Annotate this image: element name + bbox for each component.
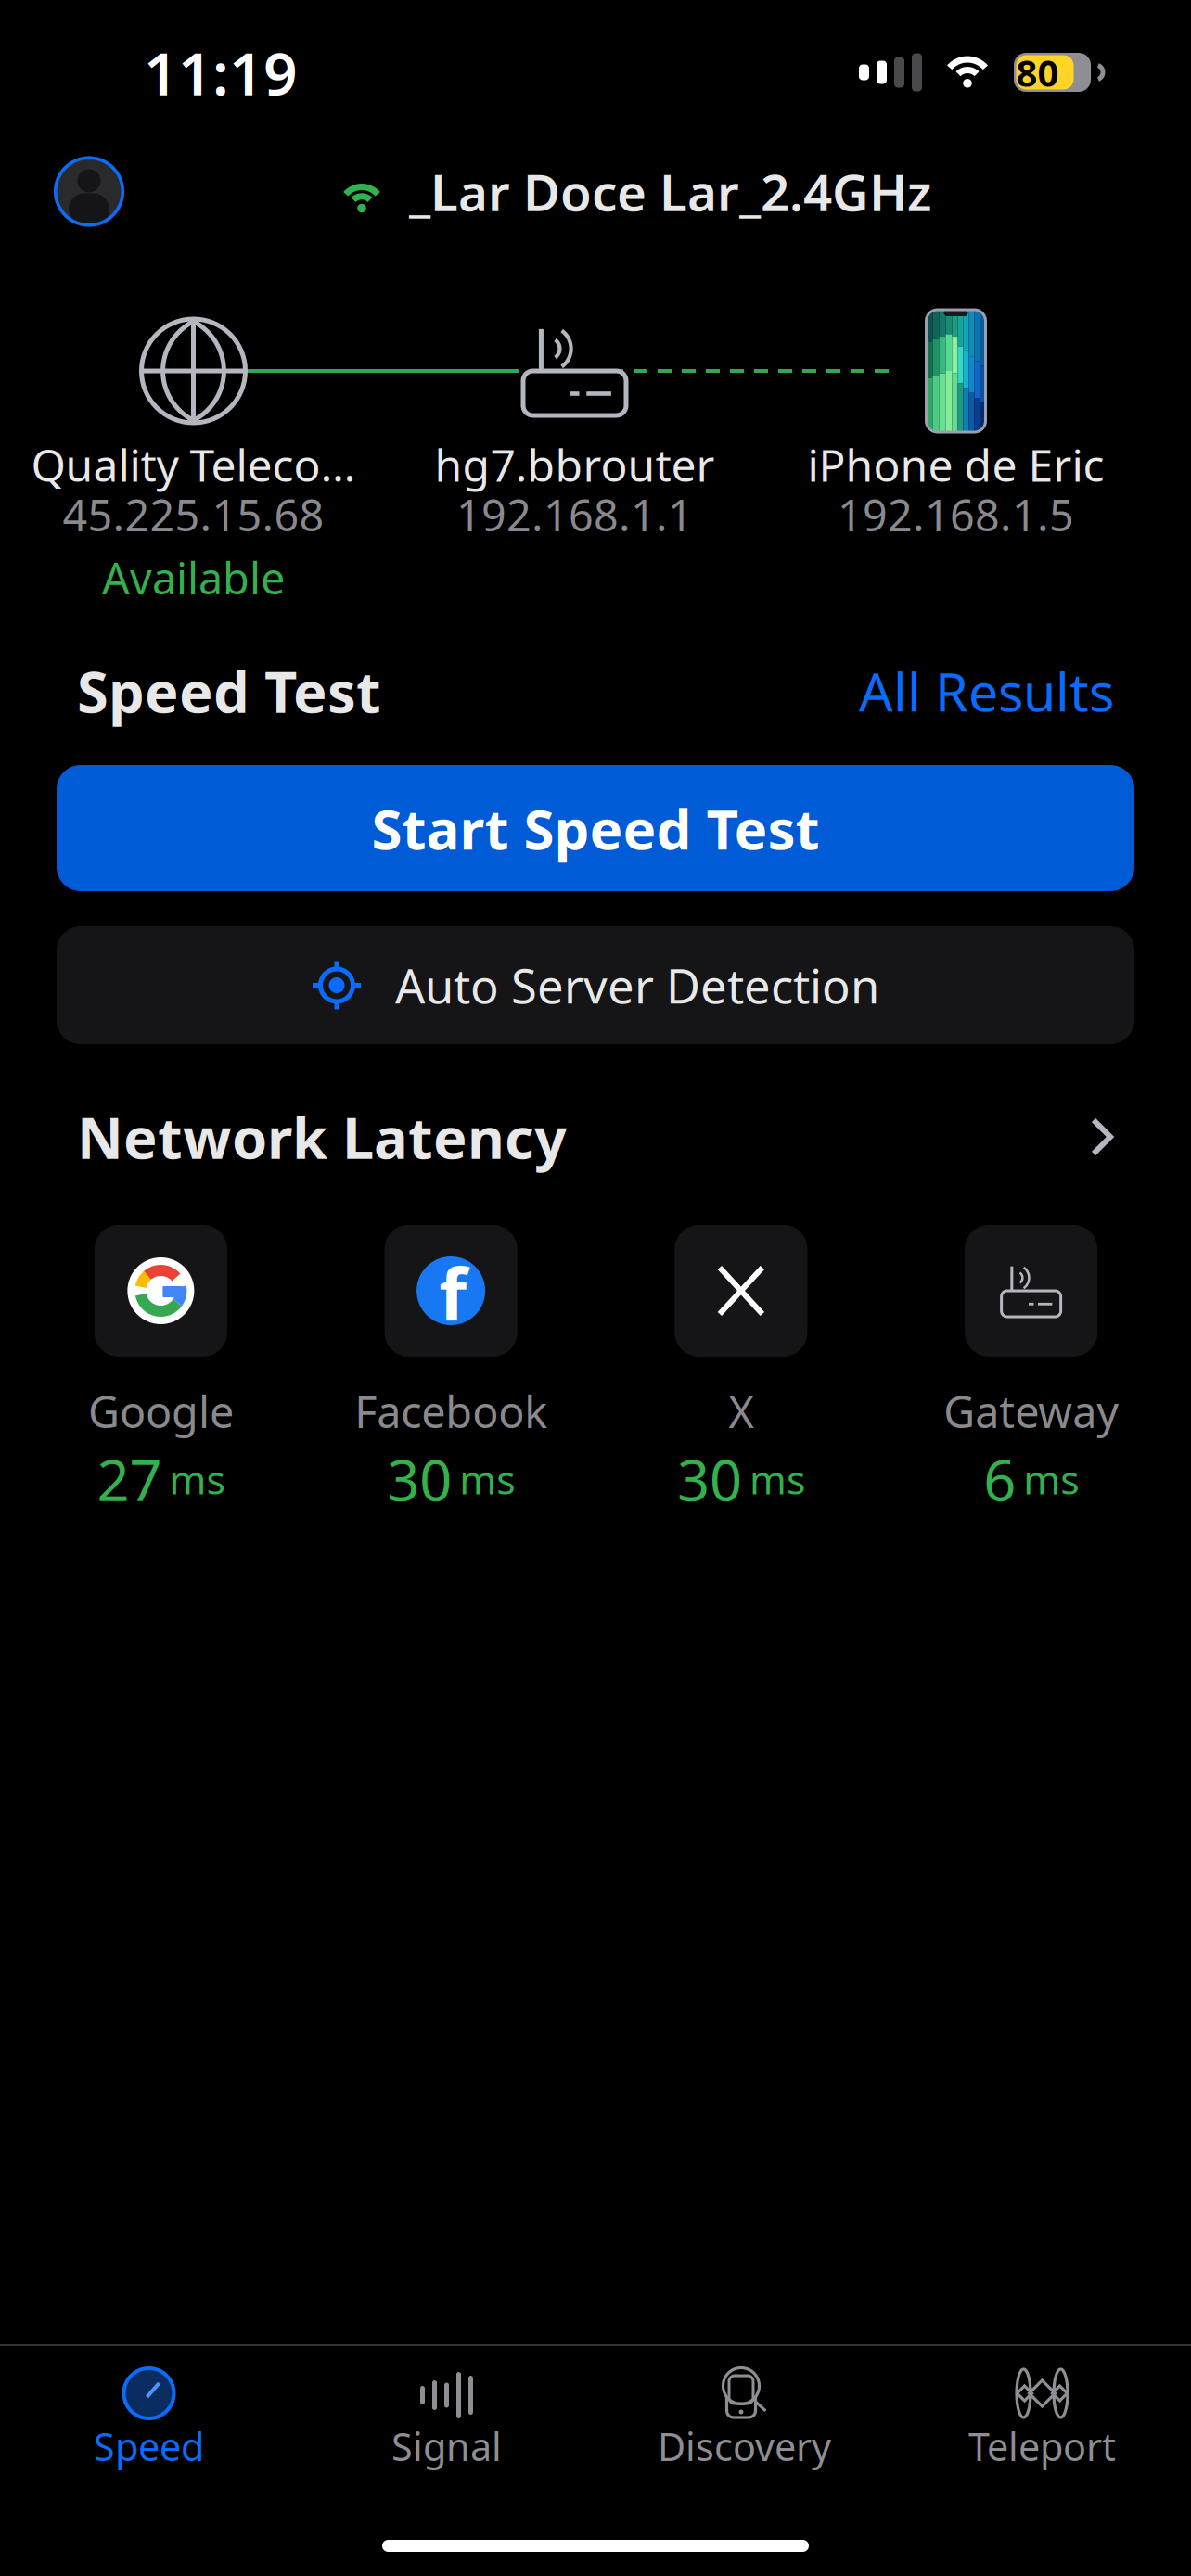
button[interactable]: Speed: [0, 2346, 298, 2481]
staticText: Speed Test: [77, 653, 381, 729]
button[interactable]: Gateway: [886, 1225, 1176, 1504]
staticText: 45.225.15.68: [63, 486, 324, 543]
staticText: Network Latency: [77, 1099, 567, 1175]
staticText: 80: [1016, 48, 1059, 97]
staticText: Google: [88, 1383, 234, 1440]
staticText: Available: [102, 549, 285, 606]
staticText: Teleport: [968, 2421, 1116, 2472]
staticText: iPhone de Eric: [807, 435, 1104, 494]
staticText: 27: [97, 1441, 162, 1517]
staticText: _Lar Doce Lar_2.4GHz: [409, 158, 931, 225]
staticText: Discovery: [658, 2421, 831, 2472]
button[interactable]: All Results: [859, 655, 1114, 726]
staticText: 192.168.1.5: [838, 486, 1074, 543]
staticText: Gateway: [943, 1383, 1119, 1440]
staticText: 30: [677, 1441, 742, 1517]
staticText: 11:19: [144, 33, 298, 112]
button[interactable]: X: [596, 1225, 886, 1504]
staticText: Quality Telecomu…: [31, 435, 356, 494]
staticText: hg7.bbrouter: [435, 435, 715, 494]
staticText: 30: [387, 1441, 452, 1517]
button[interactable]: Teleport: [893, 2346, 1191, 2481]
button[interactable]: Network Latency: [0, 1109, 1191, 1165]
staticText: Signal: [391, 2421, 502, 2472]
button[interactable]: Start Speed Test: [57, 765, 1134, 891]
button[interactable]: Account: [54, 156, 124, 227]
staticText: All Results: [859, 655, 1114, 726]
staticText: ms: [1023, 1453, 1079, 1505]
staticText: ms: [459, 1453, 515, 1505]
staticText: Auto Server Detection: [395, 954, 879, 1016]
staticText: Speed: [94, 2421, 204, 2472]
button[interactable]: Auto Server Detection: [57, 926, 1134, 1044]
staticText: ms: [169, 1453, 225, 1505]
staticText: Facebook: [354, 1383, 547, 1440]
staticText: Start Speed Test: [371, 791, 820, 865]
staticText: f: [439, 1245, 467, 1340]
button[interactable]: Discovery: [595, 2346, 893, 2481]
staticText: ms: [749, 1453, 805, 1505]
button[interactable]: Signal: [298, 2346, 595, 2481]
button[interactable]: Google: [16, 1225, 306, 1504]
staticText: 6: [983, 1441, 1016, 1517]
staticText: 192.168.1.1: [456, 486, 693, 543]
button[interactable]: f: [306, 1225, 596, 1504]
staticText: X: [729, 1383, 754, 1440]
